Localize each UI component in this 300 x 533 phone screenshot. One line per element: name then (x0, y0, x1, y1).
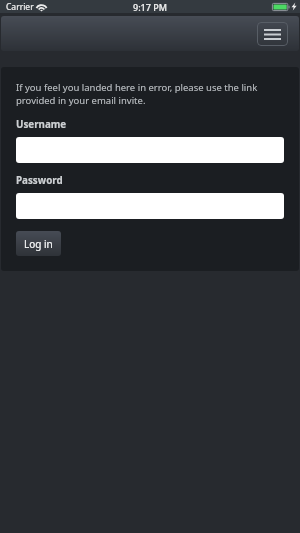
button[interactable] (16, 137, 284, 163)
button[interactable] (16, 193, 284, 219)
staticText: Carrier (6, 1, 34, 13)
staticText: Password (16, 174, 63, 187)
button[interactable]: Log in (16, 231, 61, 256)
staticText: 9:17 PM (133, 1, 167, 13)
staticText: Username (16, 118, 67, 131)
button[interactable]: Toggle navigation menu (257, 22, 288, 46)
staticText: Log in (24, 237, 53, 251)
staticText: If you feel you landed here in error, pl… (16, 81, 284, 107)
